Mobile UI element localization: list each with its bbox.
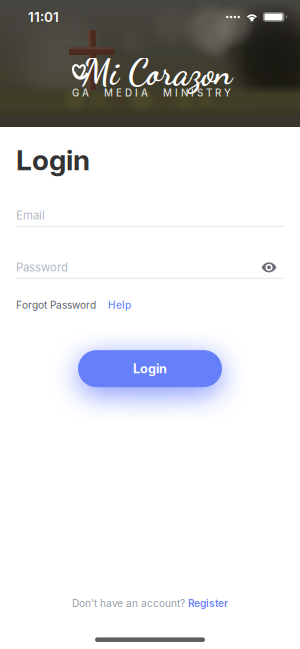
staticText: Forgot Password (16, 299, 96, 311)
staticText: Help (108, 299, 131, 311)
staticText: Email (16, 208, 45, 222)
staticText: Login (133, 361, 167, 376)
button[interactable]: Forgot Password (16, 299, 96, 311)
staticText: Register (188, 597, 228, 609)
staticText: Password (16, 260, 68, 274)
button[interactable]: Show password (261, 262, 284, 273)
staticText: G A M E D I A M I N I S T R Y (72, 87, 231, 99)
button[interactable]: Help (96, 299, 131, 311)
staticText: 11:01 (28, 9, 59, 25)
staticText: Don't have an account? (72, 597, 188, 609)
staticText: Login (16, 143, 90, 177)
staticText: Mi Corazon (82, 51, 232, 94)
button[interactable]: Register (188, 597, 228, 609)
button[interactable]: Login (78, 350, 222, 387)
